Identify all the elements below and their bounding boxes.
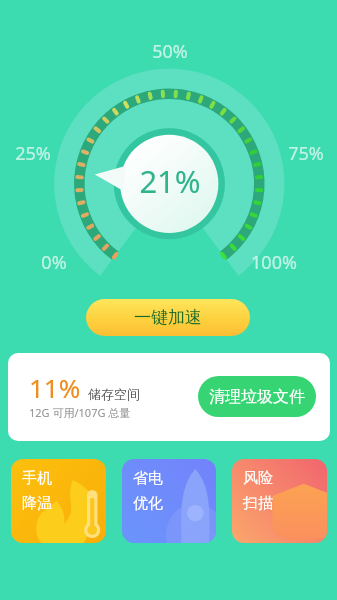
staticText: 手机 — [22, 469, 52, 488]
button[interactable]: 省电优化 — [122, 459, 216, 543]
button[interactable]: 清理垃圾文件 — [198, 376, 316, 417]
staticText: 扫描 — [243, 494, 273, 513]
staticText: 清理垃圾文件 — [209, 387, 305, 407]
staticText: 优化 — [133, 494, 163, 513]
staticText: 25% — [15, 141, 51, 166]
staticText: 省电 — [133, 469, 163, 488]
button[interactable]: 一键加速 — [86, 299, 250, 336]
staticText: 0% — [41, 250, 67, 275]
staticText: 75% — [288, 141, 324, 166]
staticText: 储存空间 — [88, 386, 140, 402]
staticText: 风险 — [243, 469, 273, 488]
staticText: 100% — [251, 250, 297, 275]
staticText: 降温 — [22, 494, 52, 513]
button[interactable]: 手机降温 — [11, 459, 106, 543]
staticText: 21% — [139, 160, 201, 202]
staticText: 50% — [152, 39, 188, 64]
staticText: 11% — [29, 370, 81, 405]
staticText: 一键加速 — [134, 307, 202, 328]
button[interactable]: 风险扫描 — [232, 459, 327, 543]
staticText: 12G 可用/107G 总量 — [29, 405, 131, 420]
